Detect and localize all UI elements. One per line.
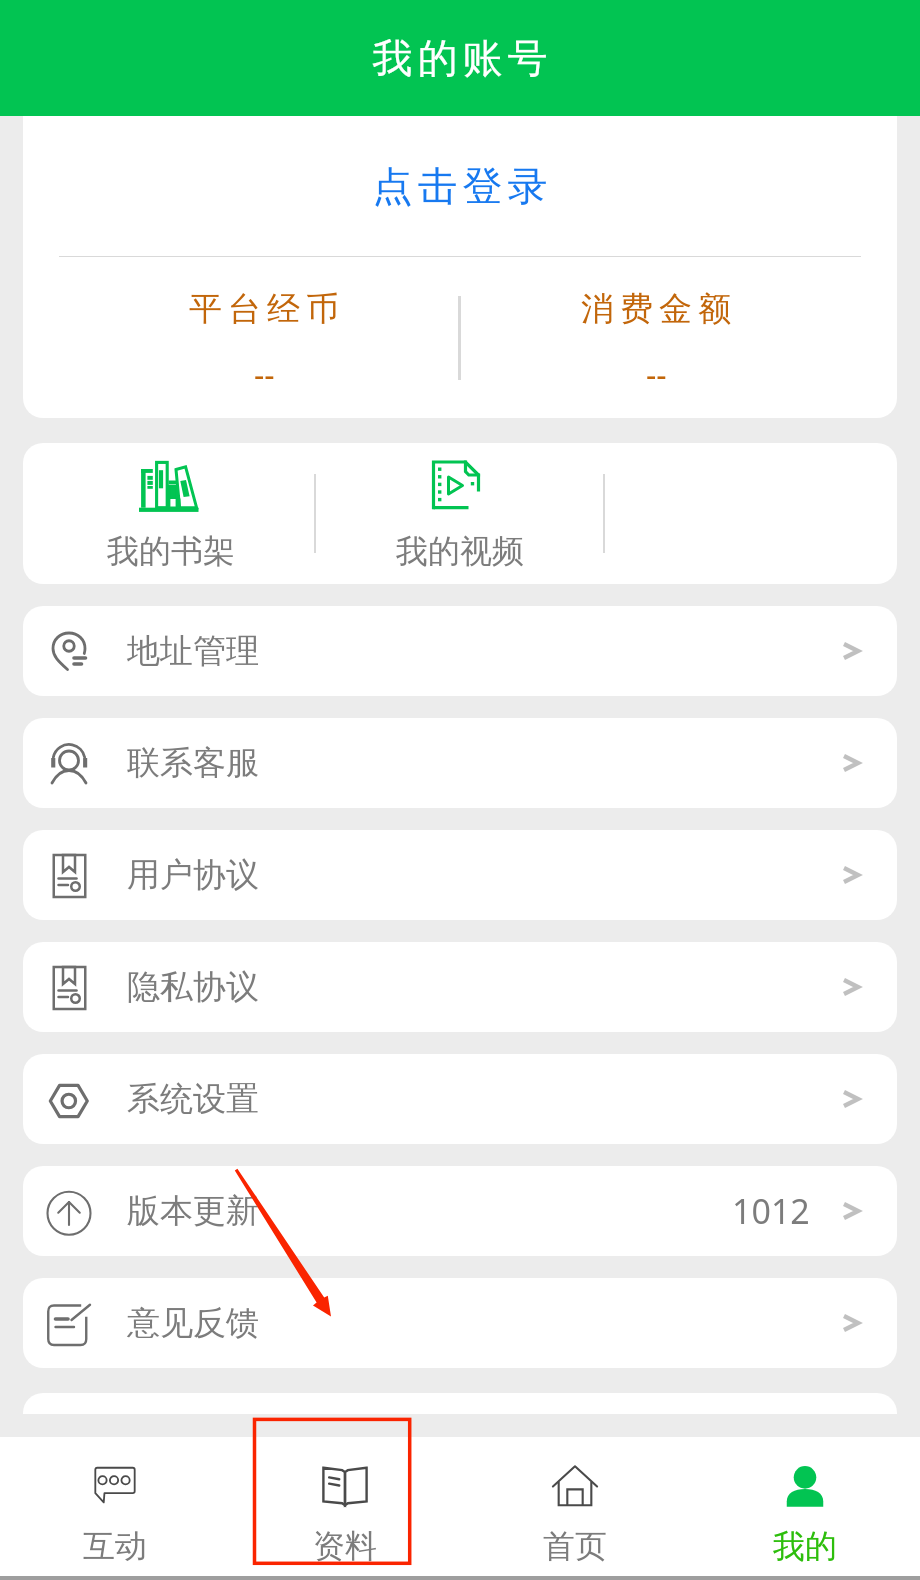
staticText: 1012 [732,1188,810,1234]
staticText: 版本更新 [127,1190,259,1232]
staticText: 资料 [313,1526,377,1566]
button[interactable]: 我的视频 [350,460,570,571]
staticText: 地址管理 [127,630,259,672]
button[interactable]: 版本更新 [23,1166,897,1256]
staticText: 联系客服 [127,742,259,784]
staticText: -- [254,353,275,397]
staticText: 系统设置 [127,1078,259,1120]
staticText: 意见反馈 [127,1302,259,1344]
staticText: 我的 [773,1526,837,1566]
staticText: 首页 [543,1526,607,1566]
staticText: 消费金额 [578,288,734,330]
staticText: 用户协议 [127,854,259,896]
staticText: 点击登录 [370,161,550,211]
button[interactable]: 意见反馈 [23,1278,897,1368]
staticText: -- [646,353,667,397]
button[interactable]: 互动 [0,1437,230,1580]
staticText: 互动 [83,1526,147,1566]
staticText: 隐私协议 [127,966,259,1008]
button[interactable]: 我的书架 [61,460,281,571]
button[interactable]: 平台经币 [154,288,374,397]
button[interactable]: 点击登录 [23,116,897,256]
button[interactable]: 联系客服 [23,718,897,808]
button[interactable]: 地址管理 [23,606,897,696]
button[interactable]: 首页 [460,1437,690,1580]
staticText: 我的视频 [396,531,524,571]
staticText: 我的书架 [107,531,235,571]
button[interactable]: 消费金额 [546,288,766,397]
button[interactable]: 隐私协议 [23,942,897,1032]
button[interactable]: 用户协议 [23,830,897,920]
button[interactable]: 系统设置 [23,1054,897,1144]
button[interactable]: 我的 [690,1437,920,1580]
staticText: 我的账号 [370,33,550,83]
button[interactable]: 资料 [230,1437,460,1580]
staticText: 平台经币 [186,288,342,330]
